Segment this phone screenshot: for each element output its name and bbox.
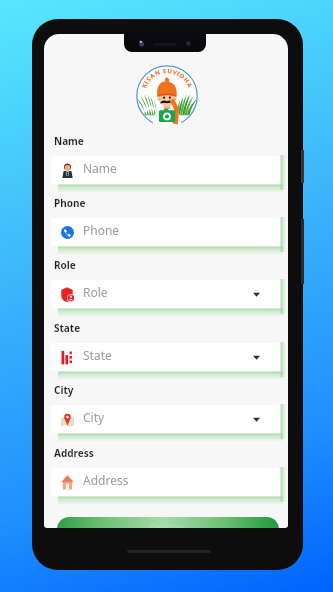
button[interactable]: Role: [51, 280, 280, 308]
staticText: Phone: [54, 196, 86, 210]
staticText: Name: [54, 134, 84, 148]
button[interactable]: Register: [57, 517, 279, 528]
button[interactable]: City: [51, 405, 280, 433]
button[interactable]: Name: [51, 156, 280, 184]
staticText: Address: [83, 472, 129, 488]
staticText: Register: [150, 520, 186, 528]
staticText: State: [83, 347, 112, 363]
staticText: Role: [54, 258, 76, 272]
button[interactable]: State: [51, 343, 280, 371]
staticText: City: [83, 409, 105, 425]
button[interactable]: Phone: [51, 218, 280, 246]
button[interactable]: Address: [51, 468, 280, 496]
staticText: Phone: [83, 222, 120, 238]
staticText: City: [54, 383, 74, 397]
staticText: Role: [83, 284, 108, 300]
staticText: State: [54, 321, 81, 335]
staticText: Name: [83, 160, 117, 176]
staticText: Address: [54, 446, 94, 460]
